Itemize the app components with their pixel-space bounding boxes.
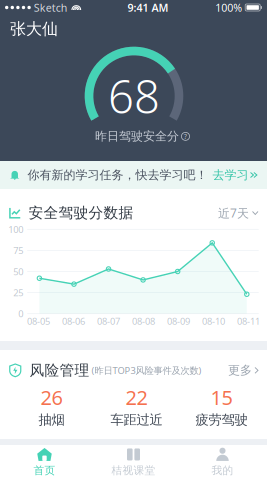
staticText: 08-10 xyxy=(202,315,225,327)
button[interactable]: 首页 xyxy=(0,445,89,480)
staticText: 75 xyxy=(13,244,23,257)
staticText: 我的 xyxy=(211,464,233,477)
staticText: 100 xyxy=(8,223,23,236)
staticText: 08-07 xyxy=(97,315,120,327)
staticText: 昨日驾驶安全分 xyxy=(95,129,179,144)
staticText: 08-09 xyxy=(167,315,190,327)
staticText: ? xyxy=(184,132,187,141)
staticText: 张大仙 xyxy=(10,19,58,39)
staticText: 车距过近 xyxy=(110,412,162,428)
staticText: 0 xyxy=(18,307,23,320)
button[interactable]: 桔视课堂 xyxy=(89,445,178,480)
staticText: (昨日TOP3风险事件及次数) xyxy=(89,364,201,377)
staticText: 26 xyxy=(40,384,62,411)
staticText: 桔视课堂 xyxy=(111,464,155,477)
button[interactable]: 近7天 xyxy=(218,201,258,225)
staticText: 抽烟 xyxy=(38,412,64,428)
staticText: 08-11 xyxy=(237,315,260,327)
staticText: 25 xyxy=(13,286,23,299)
button[interactable]: 我的 xyxy=(178,445,267,480)
button[interactable]: 你有新的学习任务，快去学习吧！ xyxy=(0,161,267,189)
staticText: 近7天 xyxy=(218,205,249,221)
staticText: 08-08 xyxy=(132,315,155,327)
staticText: 15 xyxy=(210,384,232,411)
staticText: 更多 xyxy=(228,363,252,378)
staticText: 08-06 xyxy=(62,315,85,327)
button[interactable]: 更多 xyxy=(228,359,258,382)
staticText: 9:41 AM xyxy=(127,0,168,15)
staticText: 安全驾驶分数据 xyxy=(20,204,133,222)
staticText: 你有新的学习任务，快去学习吧！ xyxy=(19,168,207,182)
staticText: 风险管理 xyxy=(21,361,89,379)
staticText: 50 xyxy=(13,265,23,278)
staticText: 首页 xyxy=(33,464,55,477)
staticText: 疲劳驾驶 xyxy=(195,412,247,428)
staticText: Sketch xyxy=(31,0,68,15)
staticText: 去学习 xyxy=(212,168,248,182)
staticText: 100% xyxy=(215,0,242,15)
staticText: 08-05 xyxy=(27,315,50,327)
staticText: 22 xyxy=(125,384,147,411)
staticText: 68 xyxy=(108,66,160,126)
